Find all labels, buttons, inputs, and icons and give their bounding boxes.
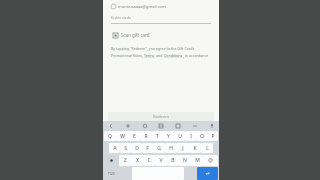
- staticText: Promotional Rules,: [111, 53, 144, 58]
- button[interactable]: Keyboard tool 6: [208, 122, 215, 129]
- staticText: H: [169, 145, 173, 152]
- staticText: Redeem: [153, 114, 170, 120]
- button[interactable]: P: [207, 131, 218, 141]
- button[interactable]: S: [120, 143, 131, 153]
- staticText: M: [195, 157, 200, 164]
- staticText: A: [113, 145, 117, 152]
- button[interactable]: Q: [104, 131, 116, 141]
- button[interactable]: X: [131, 155, 143, 166]
- staticText: R: [144, 133, 148, 140]
- button[interactable]: munnusaaaa@gmail.com: [111, 4, 211, 9]
- button[interactable]: Terms: [144, 53, 155, 58]
- button[interactable]: Conditions: [164, 53, 183, 58]
- staticText: E: [133, 133, 136, 140]
- staticText: O: [200, 133, 204, 140]
- button[interactable]: Y: [163, 131, 174, 141]
- button[interactable]: K: [189, 143, 201, 153]
- button[interactable]: B: [167, 155, 179, 166]
- staticText: V: [159, 157, 163, 164]
- staticText: G: [157, 145, 161, 152]
- button[interactable]: Redeem: [108, 112, 214, 121]
- button[interactable]: A: [109, 143, 120, 153]
- staticText: P: [211, 133, 215, 140]
- button[interactable]: Symbols: [104, 167, 119, 180]
- staticText: K: [193, 145, 197, 152]
- button[interactable]: U: [174, 131, 185, 141]
- button[interactable]: L: [201, 143, 213, 153]
- button[interactable]: I: [185, 131, 196, 141]
- staticText: Enter code: [111, 15, 132, 20]
- button[interactable]: Enter: [197, 167, 218, 180]
- button[interactable]: Keyboard tool 3: [157, 122, 164, 129]
- button[interactable]: O: [196, 131, 207, 141]
- staticText: Q: [108, 133, 112, 140]
- button[interactable]: Shift: [104, 155, 119, 166]
- staticText: , in accordance: [183, 53, 209, 58]
- staticText: W: [120, 133, 125, 140]
- button[interactable]: @: [203, 155, 218, 166]
- button[interactable]: Keyboard tool 0: [107, 122, 114, 129]
- staticText: Scan gift card: [121, 32, 150, 38]
- staticText: and: [155, 53, 164, 58]
- staticText: I: [190, 133, 192, 140]
- button[interactable]: R: [140, 131, 152, 141]
- staticText: U: [178, 133, 182, 140]
- staticText: T: [156, 133, 159, 140]
- staticText: C: [147, 157, 151, 164]
- staticText: J: [182, 145, 184, 152]
- button[interactable]: Keyboard tool 2: [141, 122, 148, 129]
- button[interactable]: F: [142, 143, 153, 153]
- staticText: L: [206, 145, 209, 152]
- button[interactable]: N: [179, 155, 191, 166]
- button[interactable]: Keyboard tool 1: [124, 122, 131, 129]
- button[interactable]: T: [152, 131, 163, 141]
- button[interactable]: Scan gift card: [111, 31, 152, 39]
- button[interactable]: Keyboard tool 4: [174, 122, 181, 129]
- staticText: Y: [167, 133, 170, 140]
- button[interactable]: C: [143, 155, 155, 166]
- button[interactable]: Keyboard tool 5: [191, 122, 198, 129]
- staticText: @: [208, 157, 213, 164]
- button[interactable]: E: [128, 131, 140, 141]
- staticText: ?123: [108, 172, 115, 176]
- staticText: By tapping "Redeem", you agree to the Gi…: [111, 46, 195, 51]
- staticText: B: [171, 157, 175, 164]
- staticText: X: [136, 157, 139, 164]
- staticText: D: [135, 145, 139, 152]
- staticText: munnusaaaa@gmail.com: [118, 4, 166, 9]
- button[interactable]: J: [177, 143, 189, 153]
- button[interactable]: Enter code: [111, 15, 211, 24]
- button[interactable]: V: [155, 155, 167, 166]
- staticText: Z: [124, 157, 127, 164]
- button[interactable]: D: [131, 143, 142, 153]
- button[interactable]: Z: [119, 155, 131, 166]
- button[interactable]: G: [153, 143, 165, 153]
- staticText: N: [183, 157, 187, 164]
- button[interactable]: H: [165, 143, 177, 153]
- staticText: S: [124, 145, 127, 152]
- button[interactable]: W: [116, 131, 128, 141]
- button[interactable]: M: [191, 155, 203, 166]
- staticText: F: [146, 145, 149, 152]
